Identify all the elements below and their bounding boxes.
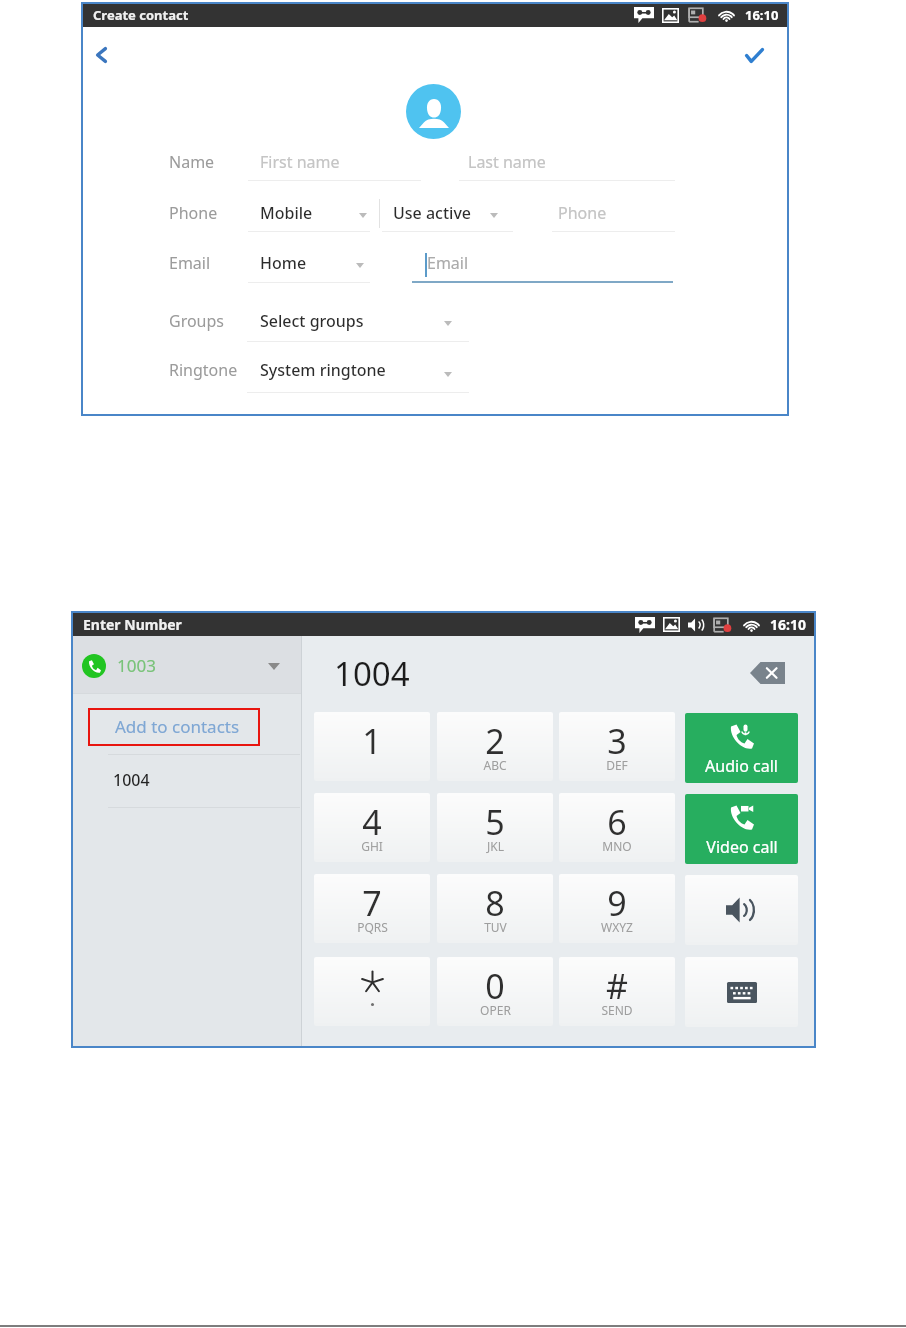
staticText: DEF xyxy=(606,757,628,773)
staticText: Email xyxy=(427,252,469,274)
staticText: Email xyxy=(169,252,211,274)
button[interactable]: 0 xyxy=(437,957,553,1026)
staticText: 3 xyxy=(607,718,627,764)
staticText: 1004 xyxy=(113,769,150,791)
staticText: Audio call xyxy=(705,755,778,777)
button[interactable]: 3 xyxy=(559,712,675,781)
staticText: 1003 xyxy=(117,654,156,677)
staticText: Home xyxy=(260,252,307,274)
staticText: JKL xyxy=(487,838,504,854)
staticText: Enter Number xyxy=(83,615,182,634)
staticText: 9 xyxy=(607,880,627,926)
button[interactable] xyxy=(314,957,430,1026)
button[interactable]: 8 xyxy=(437,874,553,943)
staticText: Phone xyxy=(558,202,607,224)
staticText: 1 xyxy=(362,718,382,764)
staticText: PQRS xyxy=(357,919,388,935)
staticText: GHI xyxy=(361,838,383,854)
button[interactable]: Speaker xyxy=(685,875,798,945)
staticText: Mobile xyxy=(260,202,313,224)
staticText: 16:10 xyxy=(745,6,779,24)
button[interactable]: Back xyxy=(82,35,121,74)
staticText: Groups xyxy=(169,310,225,332)
staticText: Create contact xyxy=(93,6,189,24)
staticText: Last name xyxy=(468,151,546,173)
staticText: TUV xyxy=(484,919,507,935)
button[interactable]: 1 xyxy=(314,712,430,781)
button[interactable]: Backspace xyxy=(743,655,791,690)
staticText: 0 xyxy=(485,963,505,1009)
staticText: ABC xyxy=(483,757,507,773)
staticText: 16:10 xyxy=(770,615,806,634)
staticText: 8 xyxy=(485,880,505,926)
staticText: 1004 xyxy=(334,651,410,696)
staticText: Use active xyxy=(393,202,472,224)
button[interactable] xyxy=(71,694,301,753)
button[interactable]: Keyboard xyxy=(685,957,798,1027)
button[interactable]: 7 xyxy=(314,874,430,943)
staticText: Phone xyxy=(169,202,218,224)
staticText: 6 xyxy=(607,799,627,845)
staticText: SEND xyxy=(601,1002,633,1018)
staticText: WXYZ xyxy=(601,919,633,935)
staticText: OPER xyxy=(480,1002,511,1018)
staticText: 2 xyxy=(485,718,505,764)
staticText: System ringtone xyxy=(260,359,386,381)
staticText: 5 xyxy=(485,799,505,845)
button[interactable]: Save contact xyxy=(735,36,774,75)
button[interactable]: 2 xyxy=(437,712,553,781)
staticText: Ringtone xyxy=(169,359,238,381)
button[interactable] xyxy=(71,636,301,693)
button[interactable]: Audio call xyxy=(685,713,798,783)
staticText: Video call xyxy=(706,836,778,858)
button[interactable] xyxy=(71,754,301,806)
button[interactable]: 4 xyxy=(314,793,430,862)
button[interactable]: # xyxy=(559,957,675,1026)
button[interactable]: Video call xyxy=(685,794,798,864)
staticText: First name xyxy=(260,151,340,173)
staticText: Name xyxy=(169,151,215,173)
staticText: Add to contacts xyxy=(115,715,240,738)
button[interactable]: 9 xyxy=(559,874,675,943)
button[interactable]: 5 xyxy=(437,793,553,862)
staticText: Select groups xyxy=(260,310,364,332)
staticText: MNO xyxy=(602,838,632,854)
staticText: 7 xyxy=(362,880,382,926)
button[interactable]: 6 xyxy=(559,793,675,862)
button[interactable]: Add photo xyxy=(406,84,461,139)
staticText: 4 xyxy=(362,799,382,845)
staticText: # xyxy=(606,963,628,1009)
